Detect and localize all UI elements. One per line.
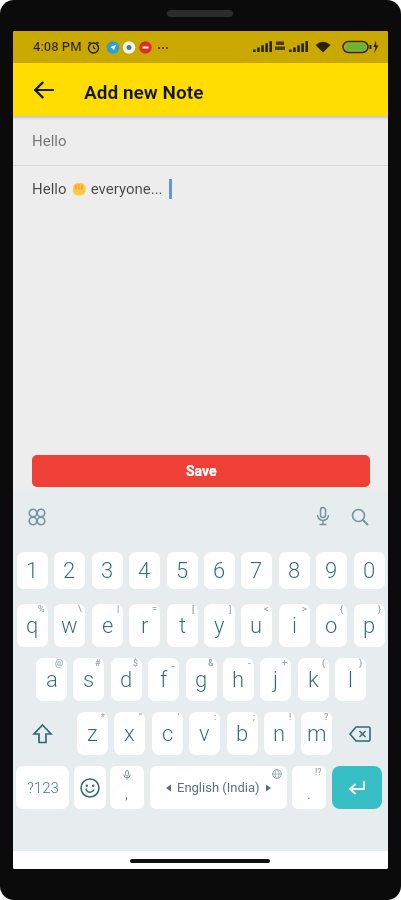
button[interactable]: v: [189, 712, 220, 755]
button[interactable]: English (India): [150, 766, 287, 809]
staticText: ]: [229, 604, 232, 615]
staticText: @: [55, 658, 64, 669]
staticText: ?123: [27, 779, 59, 797]
staticText: n: [273, 721, 286, 747]
staticText: 7: [250, 558, 263, 584]
button[interactable]: i: [279, 604, 310, 647]
staticText: x: [124, 721, 135, 747]
staticText: z: [87, 721, 98, 747]
staticText: }: [378, 604, 382, 615]
button[interactable]: t: [167, 604, 198, 647]
button[interactable]: Save: [32, 455, 370, 487]
button[interactable]: Hello: [32, 178, 172, 200]
button[interactable]: r: [129, 604, 160, 647]
staticText: $: [133, 658, 139, 669]
staticText: {: [340, 604, 344, 615]
button[interactable]: !?: [292, 766, 326, 809]
staticText: (: [322, 658, 326, 669]
staticText: #: [95, 658, 101, 669]
button[interactable]: 0: [354, 552, 385, 589]
staticText: +: [282, 658, 288, 669]
staticText: ': [178, 712, 180, 723]
button[interactable]: j: [260, 658, 291, 701]
staticText: v: [199, 721, 210, 747]
button[interactable]: q: [17, 604, 48, 647]
button[interactable]: e: [92, 604, 123, 647]
button[interactable]: 2: [54, 552, 85, 589]
staticText: h: [232, 667, 245, 693]
button[interactable]: 1: [17, 552, 48, 589]
staticText: ): [359, 658, 363, 669]
button[interactable]: ?123: [16, 766, 69, 809]
staticText: .: [307, 784, 311, 803]
staticText: k: [308, 667, 319, 693]
staticText: ,: [125, 784, 129, 803]
staticText: r: [141, 613, 149, 639]
button[interactable]: m: [301, 712, 332, 755]
staticText: ?: [324, 712, 329, 723]
button[interactable]: [74, 766, 106, 809]
staticText: q: [26, 613, 39, 639]
button[interactable]: c: [152, 712, 183, 755]
staticText: l: [348, 667, 353, 693]
button[interactable]: 4: [129, 552, 160, 589]
staticText: i: [292, 613, 297, 639]
button[interactable]: 3: [92, 552, 123, 589]
staticText: 1: [26, 558, 39, 584]
button[interactable]: y: [204, 604, 235, 647]
button[interactable]: p: [354, 604, 385, 647]
staticText: j: [273, 667, 279, 693]
staticText: 2: [63, 558, 76, 584]
button[interactable]: 9: [316, 552, 347, 589]
button[interactable]: [309, 502, 337, 532]
staticText: =: [152, 604, 157, 615]
button[interactable]: [15, 712, 69, 755]
button[interactable]: s: [73, 658, 104, 701]
button[interactable]: w: [54, 604, 85, 647]
button[interactable]: g: [186, 658, 217, 701]
button[interactable]: [22, 502, 52, 532]
button[interactable]: 7: [241, 552, 272, 589]
button[interactable]: [22, 78, 66, 102]
button[interactable]: l: [335, 658, 366, 701]
staticText: \: [78, 604, 82, 615]
button[interactable]: 8: [279, 552, 310, 589]
staticText: 8: [288, 558, 301, 584]
button[interactable]: x: [114, 712, 145, 755]
staticText: %: [38, 604, 45, 615]
button[interactable]: [345, 502, 375, 532]
button[interactable]: [333, 712, 386, 755]
staticText: 6: [213, 558, 226, 584]
staticText: a: [46, 667, 58, 693]
staticText: c: [162, 721, 174, 747]
staticText: d: [120, 667, 133, 693]
button[interactable]: o: [316, 604, 347, 647]
button[interactable]: Hello: [13, 116, 388, 165]
button[interactable]: f: [148, 658, 179, 701]
staticText: 0: [363, 558, 376, 584]
staticText: ;: [253, 712, 255, 723]
staticText: y: [214, 613, 225, 639]
button[interactable]: d: [111, 658, 142, 701]
staticText: !: [289, 712, 292, 723]
button[interactable]: b: [227, 712, 258, 755]
staticText: Hello: [32, 180, 71, 198]
staticText: -: [248, 658, 251, 669]
staticText: _: [171, 658, 176, 669]
button[interactable]: a: [36, 658, 67, 701]
staticText: b: [236, 721, 249, 747]
button[interactable]: u: [241, 604, 272, 647]
staticText: |: [117, 604, 120, 615]
staticText: 3: [101, 558, 114, 584]
button[interactable]: n: [264, 712, 295, 755]
button[interactable]: k: [298, 658, 329, 701]
button[interactable]: 6: [204, 552, 235, 589]
button[interactable]: [332, 766, 382, 809]
button[interactable]: z: [77, 712, 108, 755]
button[interactable]: 5: [167, 552, 198, 589]
staticText: :: [214, 712, 217, 723]
staticText: <: [264, 604, 269, 615]
button[interactable]: ,: [110, 766, 144, 809]
staticText: !?: [315, 767, 322, 778]
button[interactable]: h: [223, 658, 254, 701]
